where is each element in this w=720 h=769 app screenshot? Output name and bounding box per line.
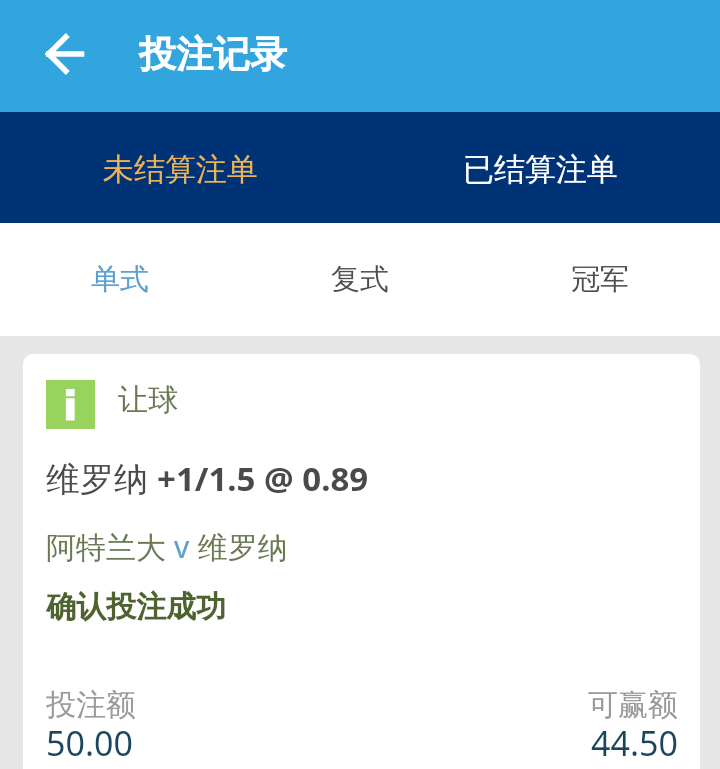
- button[interactable]: Information: [23, 354, 700, 769]
- staticText: 投注记录: [139, 31, 287, 78]
- staticText: 未结算注单: [103, 150, 258, 189]
- staticText: 已结算注单: [463, 150, 618, 189]
- button[interactable]: 已结算注单: [360, 114, 720, 225]
- staticText: 复式: [331, 261, 389, 298]
- button[interactable]: 未结算注单: [0, 114, 360, 225]
- staticText: 让球: [118, 381, 178, 419]
- button[interactable]: 冠军: [480, 223, 720, 336]
- staticText: 单式: [91, 261, 149, 298]
- staticText: +1/1.5 @ 0.89: [157, 456, 369, 501]
- staticText: 投注额: [46, 686, 136, 724]
- staticText: v: [174, 526, 190, 567]
- staticText: 阿特兰大: [46, 526, 174, 567]
- staticText: 44.50: [591, 720, 678, 765]
- staticText: 冠军: [571, 261, 629, 298]
- other: Information: [46, 380, 95, 429]
- staticText: 50.00: [46, 720, 133, 765]
- staticText: 维罗纳: [190, 526, 288, 567]
- staticText: 确认投注成功: [46, 588, 226, 626]
- button[interactable]: Back: [32, 22, 96, 86]
- button[interactable]: 单式: [0, 223, 240, 336]
- staticText: 维罗纳: [46, 455, 157, 501]
- button[interactable]: 复式: [240, 223, 480, 336]
- staticText: 可赢额: [588, 686, 678, 724]
